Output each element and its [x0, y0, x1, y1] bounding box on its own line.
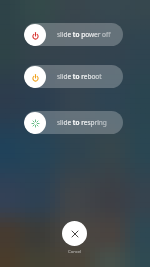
staticText: slide to reboot	[57, 72, 102, 81]
staticText: slide to power off	[57, 30, 111, 39]
button[interactable]: slide to power off	[24, 23, 123, 46]
button[interactable]: slide to respring	[24, 111, 123, 134]
staticText: slide to respring	[57, 118, 107, 127]
button[interactable]: slide to reboot	[24, 65, 123, 88]
staticText: Cancel	[68, 248, 82, 254]
button[interactable]: Cancel	[62, 221, 87, 246]
